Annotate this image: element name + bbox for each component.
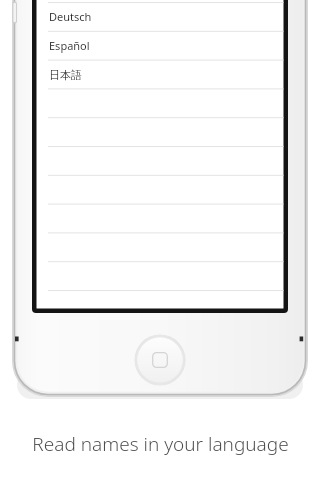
button[interactable] xyxy=(37,176,284,205)
button[interactable] xyxy=(37,89,284,118)
button[interactable]: Español xyxy=(37,31,284,60)
button[interactable] xyxy=(37,234,284,263)
button[interactable] xyxy=(37,147,284,176)
button[interactable]: Deutsch xyxy=(37,2,284,31)
button[interactable]: 日本語 xyxy=(37,60,284,89)
button[interactable]: Home xyxy=(135,335,185,385)
staticText: Español xyxy=(49,38,90,53)
button[interactable] xyxy=(37,205,284,234)
staticText: 日本語 xyxy=(49,68,82,82)
staticText: Deutsch xyxy=(49,9,92,24)
button[interactable] xyxy=(37,263,284,292)
button[interactable] xyxy=(37,118,284,147)
staticText: Read names in your language xyxy=(32,431,289,457)
